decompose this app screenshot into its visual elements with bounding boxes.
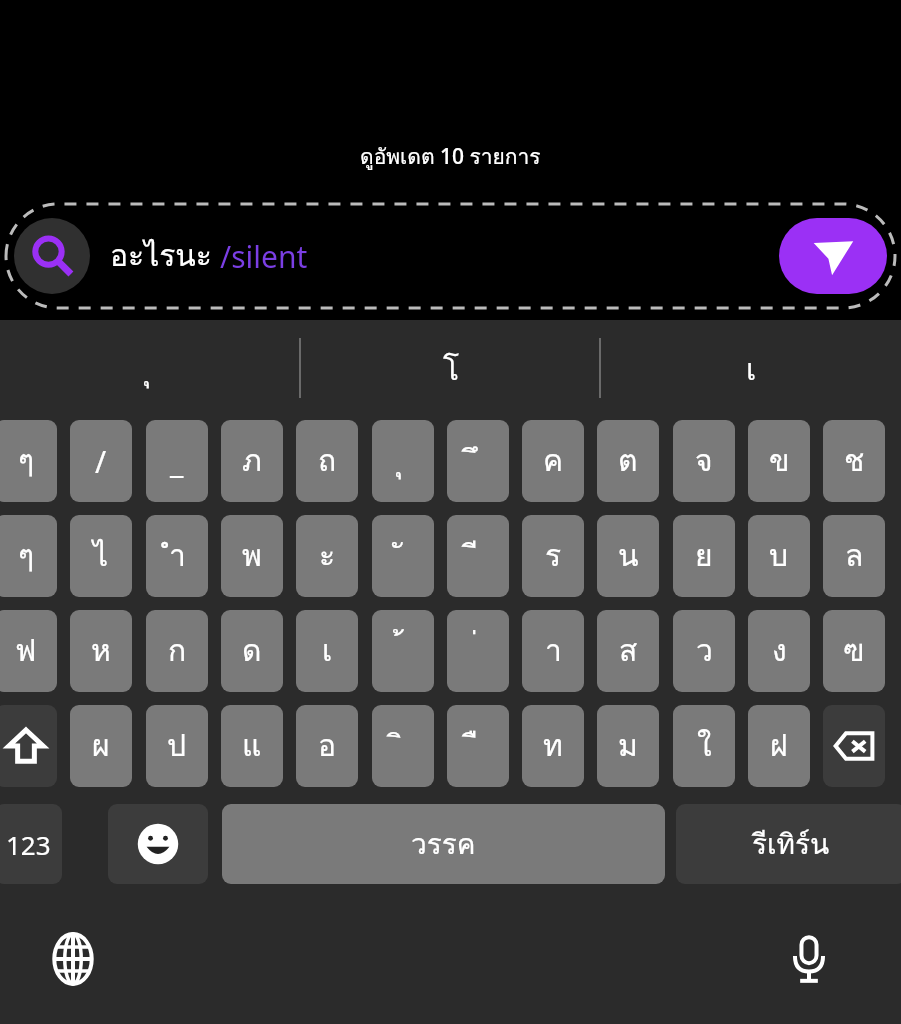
button[interactable]: ำ <box>146 515 208 597</box>
staticText: ก <box>168 627 187 675</box>
button[interactable]: Search <box>4 202 897 310</box>
staticText: ดูอัพเดต 10 รายการ <box>360 140 541 173</box>
staticText: บ <box>769 532 789 580</box>
button[interactable]: ี <box>447 515 509 597</box>
button[interactable]: ๆ <box>0 420 57 502</box>
button[interactable]: ฟ <box>0 610 57 692</box>
button[interactable]: ้ <box>372 610 434 692</box>
button[interactable]: ย <box>673 515 735 597</box>
button[interactable]: ฝ <box>748 705 810 787</box>
button[interactable]: ิ <box>372 705 434 787</box>
button[interactable]: ห <box>70 610 132 692</box>
staticText: ฃ <box>843 627 865 675</box>
staticText: ม <box>618 722 638 770</box>
button[interactable]: รีเทิร์น <box>676 804 901 884</box>
button[interactable]: / <box>70 420 132 502</box>
staticText: ห <box>91 627 111 675</box>
staticText: ภ <box>242 437 262 485</box>
button[interactable]: ร <box>522 515 584 597</box>
staticText: ๆ <box>18 437 35 485</box>
button[interactable]: ม <box>597 705 659 787</box>
button[interactable]: Emoji <box>108 804 208 884</box>
button[interactable]: แ <box>221 705 283 787</box>
button[interactable]: ป <box>146 705 208 787</box>
staticText: ด <box>242 627 262 675</box>
staticText: ะ <box>319 532 336 580</box>
button[interactable]: ข <box>748 420 810 502</box>
button[interactable]: ด <box>221 610 283 692</box>
staticText: ต <box>618 437 638 485</box>
staticText: ถ <box>318 437 337 485</box>
staticText: ง <box>772 627 787 675</box>
button[interactable]: เ <box>601 320 901 420</box>
button[interactable]: ต <box>597 420 659 502</box>
staticText: อ <box>318 722 337 770</box>
staticText: เ <box>746 346 757 394</box>
staticText: ช <box>844 437 865 485</box>
button[interactable]: ั <box>372 515 434 597</box>
staticText: ๆ <box>18 532 35 580</box>
button[interactable]: อ <box>296 705 358 787</box>
staticText: ว <box>696 627 713 675</box>
button[interactable]: Shift <box>0 705 57 787</box>
button[interactable]: ะ <box>296 515 358 597</box>
staticText: ำ <box>169 532 186 580</box>
button[interactable]: พ <box>221 515 283 597</box>
staticText: พ <box>242 532 262 580</box>
staticText: / <box>95 441 107 482</box>
staticText: _ <box>170 441 184 482</box>
button[interactable]: ก <box>146 610 208 692</box>
button[interactable]: ว <box>673 610 735 692</box>
button[interactable]: ึ <box>447 420 509 502</box>
button[interactable]: ถ <box>296 420 358 502</box>
button[interactable]: ไ <box>70 515 132 597</box>
staticText: จ <box>695 437 713 485</box>
staticText: น <box>618 532 639 580</box>
button[interactable]: บ <box>748 515 810 597</box>
button[interactable]: ุ <box>372 420 434 502</box>
staticText: ข <box>769 437 790 485</box>
button[interactable]: ช <box>823 420 885 502</box>
button[interactable]: า <box>522 610 584 692</box>
staticText: เ <box>322 627 333 675</box>
button[interactable]: ่ <box>447 610 509 692</box>
staticText: ผ <box>92 722 110 770</box>
button[interactable]: ภ <box>221 420 283 502</box>
staticText: ฝ <box>770 722 788 770</box>
button[interactable]: ุ <box>0 320 301 420</box>
button[interactable]: ล <box>823 515 885 597</box>
staticText: ร <box>545 532 562 580</box>
staticText: วรรค <box>411 822 476 867</box>
button[interactable]: เ <box>296 610 358 692</box>
button[interactable]: Send <box>779 218 887 294</box>
staticText: /silent <box>220 236 308 277</box>
button[interactable]: ฃ <box>823 610 885 692</box>
button[interactable]: ค <box>522 420 584 502</box>
staticText: ท <box>543 722 563 770</box>
staticText: ใ <box>697 722 712 770</box>
staticText: ย <box>695 532 713 580</box>
button[interactable]: วรรค <box>222 804 665 884</box>
button[interactable]: Backspace <box>823 705 885 787</box>
button[interactable]: ื <box>447 705 509 787</box>
button[interactable]: 123 <box>0 804 62 884</box>
button[interactable]: โ <box>301 320 601 420</box>
button[interactable]: Voice input <box>778 928 840 990</box>
staticText: 123 <box>6 827 51 862</box>
button[interactable]: ท <box>522 705 584 787</box>
staticText: อะไรนะ <box>110 232 220 280</box>
button[interactable]: ผ <box>70 705 132 787</box>
staticText: ป <box>167 722 187 770</box>
button[interactable]: ใ <box>673 705 735 787</box>
button[interactable]: ส <box>597 610 659 692</box>
button[interactable]: Change keyboard language <box>42 928 104 990</box>
button[interactable]: ๆ <box>0 515 57 597</box>
staticText: ค <box>543 437 564 485</box>
button[interactable]: _ <box>146 420 208 502</box>
button[interactable]: Search <box>14 218 90 294</box>
button[interactable]: น <box>597 515 659 597</box>
staticText: า <box>545 627 562 675</box>
button[interactable]: จ <box>673 420 735 502</box>
staticText: รีเทิร์น <box>752 822 830 867</box>
button[interactable]: ง <box>748 610 810 692</box>
